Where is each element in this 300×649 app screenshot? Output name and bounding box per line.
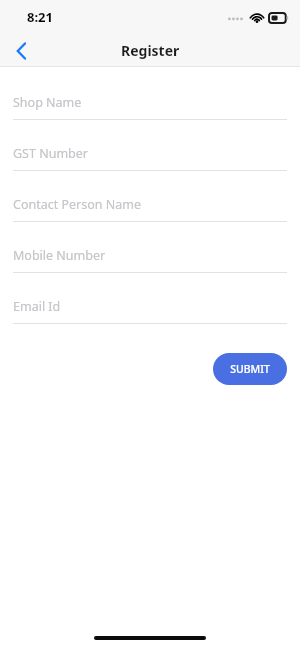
button[interactable]: Contact Person Name: [0, 187, 300, 238]
staticText: Shop Name: [13, 94, 82, 111]
button[interactable]: Email Id: [0, 289, 300, 340]
staticText: Contact Person Name: [13, 196, 142, 213]
button[interactable]: Back: [0, 34, 42, 67]
staticText: Register: [121, 41, 180, 60]
staticText: Mobile Number: [13, 247, 106, 264]
staticText: SUBMIT: [230, 362, 270, 376]
button[interactable]: Shop Name: [0, 85, 300, 136]
button[interactable]: SUBMIT: [213, 353, 287, 385]
button[interactable]: Mobile Number: [0, 238, 300, 289]
button[interactable]: GST Number: [0, 136, 300, 187]
staticText: 8:21: [27, 8, 53, 26]
staticText: GST Number: [13, 145, 88, 162]
staticText: Email Id: [13, 298, 61, 315]
